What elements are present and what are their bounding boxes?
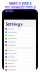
staticText: Make it yours <box>8 2 31 5</box>
button[interactable] <box>4 68 36 71</box>
button[interactable] <box>4 31 36 34</box>
button[interactable] <box>4 55 36 58</box>
button[interactable] <box>4 65 36 68</box>
button[interactable] <box>4 44 36 47</box>
button[interactable] <box>4 59 36 62</box>
button[interactable] <box>4 34 36 37</box>
staticText: Settings <box>5 21 22 27</box>
button[interactable] <box>4 40 36 43</box>
button[interactable] <box>4 62 36 65</box>
button[interactable] <box>4 49 36 52</box>
button[interactable] <box>4 52 36 55</box>
button[interactable] <box>4 27 36 30</box>
staticText: Personalize every detail <box>4 5 35 13</box>
button[interactable] <box>4 37 36 40</box>
